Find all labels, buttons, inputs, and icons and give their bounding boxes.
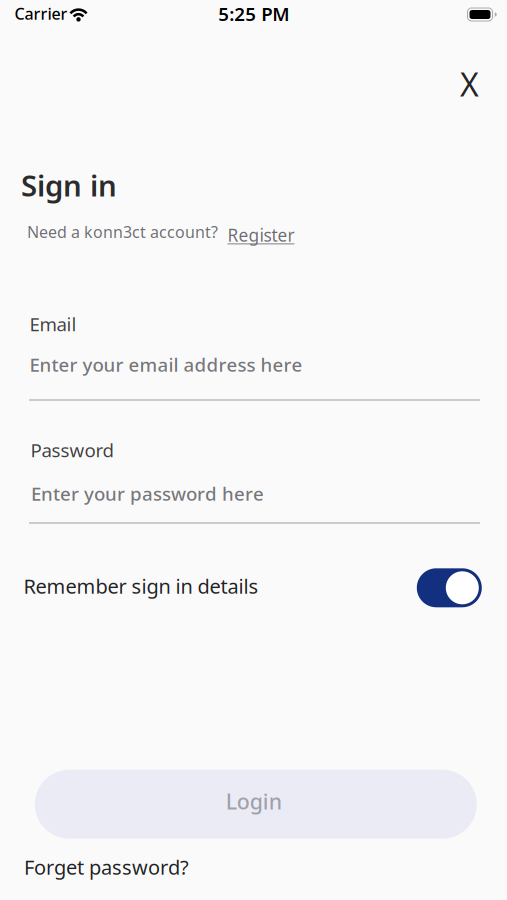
staticText: 5:25 PM (218, 1, 289, 26)
button[interactable]: Register (227, 223, 294, 246)
staticText: Forget password? (24, 854, 189, 880)
staticText: Remember sign in details (23, 573, 258, 599)
button[interactable]: Forget password? (24, 854, 189, 880)
staticText: Enter your email address here (29, 352, 302, 377)
staticText: X (460, 63, 479, 105)
staticText: Email (29, 312, 76, 336)
button[interactable]: Close (460, 63, 479, 105)
staticText: Register (227, 223, 294, 246)
staticText: Sign in (21, 165, 117, 204)
staticText: Password (30, 438, 113, 462)
staticText: Carrier (14, 3, 67, 24)
button[interactable]: Remember sign in details (417, 568, 482, 607)
button[interactable]: Login (35, 770, 477, 839)
staticText: Login (226, 787, 282, 815)
staticText: Enter your password here (31, 481, 264, 506)
staticText: Need a konn3ct account? (27, 221, 218, 242)
